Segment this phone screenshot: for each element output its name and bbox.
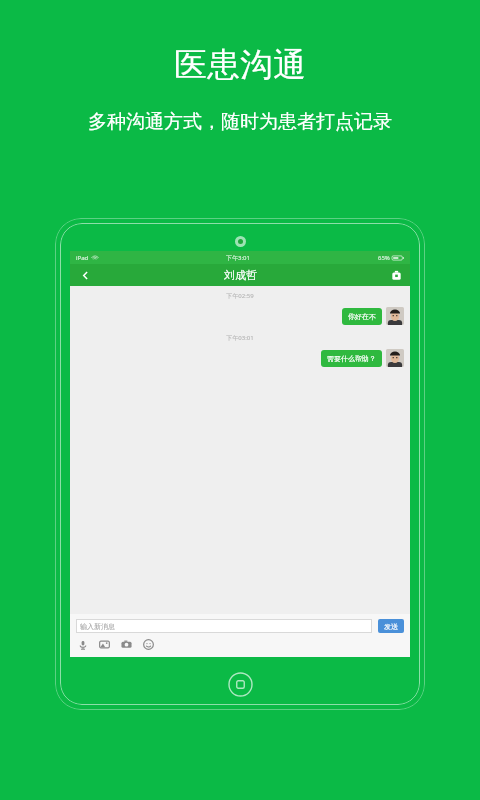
button[interactable]: Contact avatar bbox=[386, 349, 404, 367]
button[interactable]: Records bbox=[382, 264, 410, 286]
staticText: 下午03:01 bbox=[70, 334, 410, 342]
button[interactable]: 输入新消息 bbox=[76, 619, 372, 633]
staticText: 下午02:59 bbox=[70, 292, 410, 300]
staticText: 下午3:01 bbox=[226, 254, 250, 262]
button[interactable]: 需要什么帮助？ bbox=[321, 350, 382, 367]
staticText: 输入新消息 bbox=[80, 622, 115, 631]
button[interactable]: Home bbox=[228, 672, 253, 697]
staticText: 刘成哲 bbox=[224, 268, 257, 282]
staticText: 你好在不 bbox=[348, 312, 376, 321]
button[interactable]: Send image bbox=[98, 638, 111, 651]
button[interactable]: 发送 bbox=[378, 619, 404, 633]
button[interactable]: Back bbox=[70, 264, 100, 286]
staticText: 需要什么帮助？ bbox=[327, 354, 376, 363]
button[interactable]: Contact avatar bbox=[386, 307, 404, 325]
button[interactable]: Voice message bbox=[76, 638, 89, 651]
staticText: 发送 bbox=[384, 622, 398, 631]
staticText: iPad bbox=[76, 254, 89, 262]
staticText: 65% bbox=[378, 254, 390, 262]
button[interactable]: 你好在不 bbox=[342, 308, 382, 325]
button[interactable]: Emoji bbox=[142, 638, 155, 651]
staticText: 多种沟通方式，随时为患者打点记录 bbox=[88, 110, 392, 134]
button[interactable]: Take photo bbox=[120, 638, 133, 651]
staticText: 医患沟通 bbox=[174, 44, 306, 86]
